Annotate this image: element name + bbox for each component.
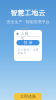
staticText: 智慧工地云 xyxy=(10,9,45,17)
staticText: 登 录 xyxy=(23,40,32,45)
button[interactable]: 登 录 xyxy=(16,40,40,45)
staticText: 安全生产 · 智能管理平台 xyxy=(6,19,49,24)
staticText: 立即体验 xyxy=(20,94,36,99)
staticText: 忘记密码? 注册新账号 xyxy=(17,48,38,55)
staticText: 请输入账号 xyxy=(21,26,29,41)
button[interactable]: 立即体验 xyxy=(14,93,42,100)
